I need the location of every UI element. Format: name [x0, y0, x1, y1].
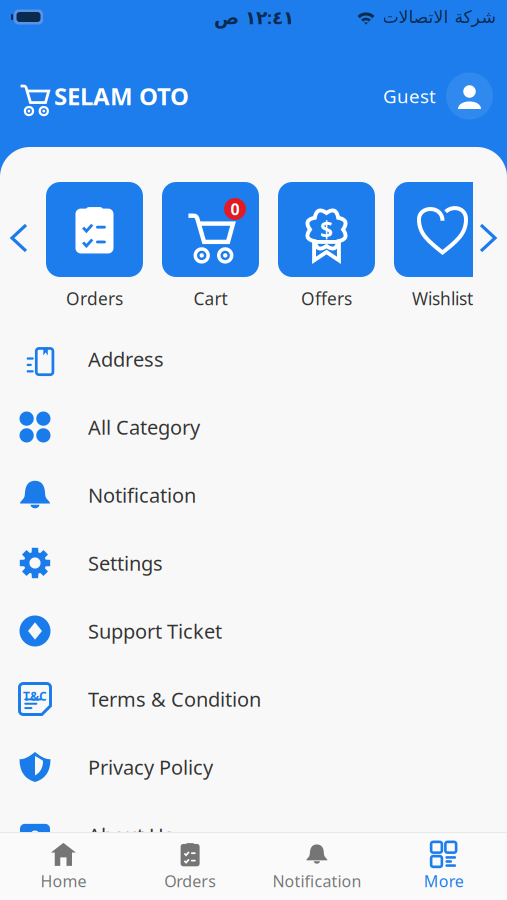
button[interactable]: Notification — [0, 461, 507, 529]
staticText: All Category — [88, 414, 200, 440]
button[interactable] — [394, 182, 491, 277]
staticText: Support Ticket — [88, 618, 222, 644]
staticText: SELAM OTO — [54, 80, 189, 112]
staticText: Privacy Policy — [88, 754, 213, 780]
button[interactable]: $ — [278, 182, 375, 277]
button[interactable]: Home — [0, 841, 127, 892]
staticText: Terms & Condition — [88, 686, 261, 712]
staticText: Notification — [272, 870, 361, 892]
staticText: About Us — [88, 822, 174, 848]
button[interactable]: Address — [0, 325, 507, 393]
staticText: Offers — [301, 287, 352, 310]
button[interactable]: Next — [473, 217, 503, 259]
staticText: شركة الاتصالات — [382, 7, 496, 27]
button[interactable]: Notification — [253, 841, 380, 892]
staticText: ١٢:٤١ ص — [213, 5, 293, 29]
staticText: Orders — [66, 287, 123, 310]
staticText: Wishlist — [412, 287, 473, 310]
staticText: Orders — [164, 870, 216, 892]
button[interactable]: Previous — [4, 217, 34, 259]
staticText: Home — [40, 870, 86, 892]
staticText: Cart — [193, 287, 227, 310]
button[interactable]: Guest — [383, 68, 507, 123]
staticText: $ — [320, 214, 333, 244]
button[interactable]: Settings — [0, 529, 507, 597]
staticText: 0 — [230, 198, 239, 220]
button[interactable]: T&C — [0, 665, 507, 733]
staticText: More — [424, 870, 464, 892]
staticText: Address — [88, 346, 164, 372]
button[interactable]: More — [380, 841, 507, 892]
button[interactable]: Privacy Policy — [0, 733, 507, 801]
button[interactable]: Support Ticket — [0, 597, 507, 665]
button[interactable]: About Us — [0, 801, 507, 869]
staticText: T&C — [23, 688, 47, 704]
staticText: Settings — [88, 550, 163, 576]
button[interactable] — [46, 182, 143, 277]
button[interactable]: All Category — [0, 393, 507, 461]
button[interactable]: Orders — [127, 841, 254, 892]
staticText: Guest — [383, 84, 436, 108]
button[interactable]: 0 — [162, 182, 259, 277]
staticText: Notification — [88, 482, 196, 508]
button[interactable]: SELAM OTO — [0, 74, 189, 118]
